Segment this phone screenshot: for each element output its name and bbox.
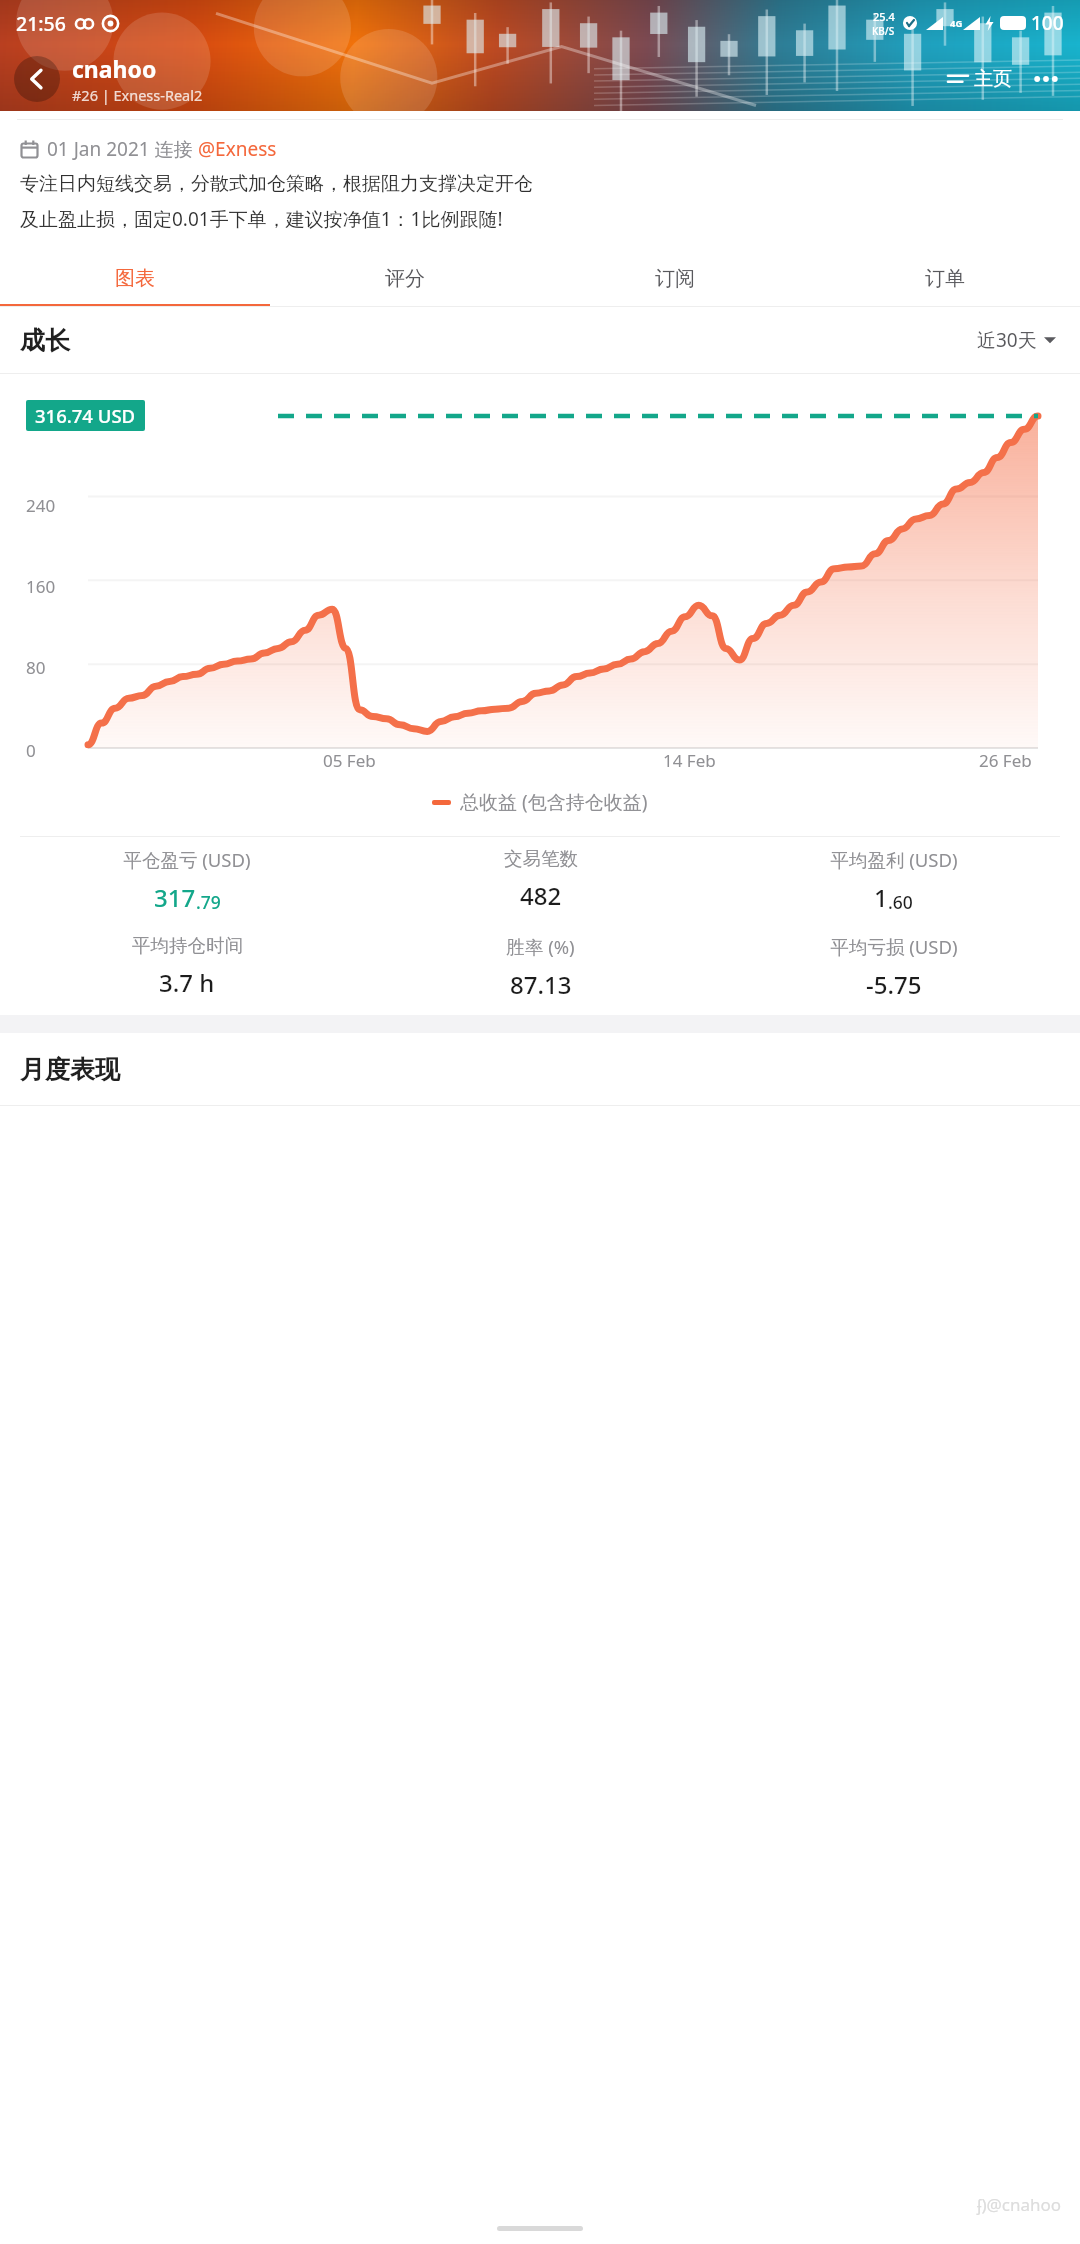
staticText: 100 (1031, 10, 1064, 36)
staticText: 4G (950, 17, 963, 30)
staticText: 1 (874, 881, 888, 914)
staticText: 80 (26, 656, 46, 679)
button[interactable]: 01 Jan 2021 连接 (20, 136, 1060, 162)
staticText: .60 (888, 890, 913, 914)
button[interactable]: 近30天 (973, 323, 1060, 357)
button[interactable]: 平均持仓时间 (10, 934, 364, 999)
staticText: 评分 (385, 266, 425, 291)
staticText: 3.7 h (159, 966, 215, 999)
staticText: #26 | Exness-Real2 (72, 85, 203, 105)
button[interactable]: 平均亏损 (USD) (717, 934, 1070, 1001)
staticText: 平均盈利 (USD) (830, 847, 958, 872)
staticText: -5.75 (866, 968, 922, 1001)
button[interactable]: 图表 (0, 252, 270, 304)
button[interactable]: 交易笔数 (364, 847, 717, 912)
staticText: 0 (26, 739, 36, 762)
staticText: 总收益 (包含持仓收益) (460, 789, 648, 815)
button[interactable]: 平仓盈亏 (USD) (10, 847, 364, 914)
button[interactable]: 订阅 (540, 252, 810, 304)
staticText: 317 (154, 881, 196, 914)
staticText: 25.4 (873, 9, 895, 24)
button[interactable]: 主页 (942, 63, 1018, 95)
button[interactable]: 订单 (810, 252, 1080, 304)
staticText: .79 (196, 890, 221, 914)
button[interactable]: Back (14, 56, 60, 102)
staticText: 订单 (925, 266, 965, 291)
staticText: 26 Feb (979, 749, 1032, 772)
staticText: KB/S (872, 24, 895, 38)
staticText: 及止盈止损，固定0.01手下单，建议按净值1：1比例跟随! (20, 206, 503, 232)
staticText: 05 Feb (323, 749, 376, 772)
staticText: 316.74 USD (35, 403, 136, 428)
staticText: @Exness (198, 136, 277, 162)
staticText: 平均持仓时间 (132, 934, 243, 957)
staticText: 胜率 (%) (506, 934, 575, 959)
staticText: 平仓盈亏 (USD) (123, 847, 251, 872)
staticText: ʄ)@cnahoo (977, 2193, 1062, 2216)
staticText: 87.13 (510, 968, 572, 1001)
button[interactable]: More options (1026, 59, 1066, 99)
staticText: 成长 (20, 325, 70, 356)
button[interactable]: 胜率 (%) (364, 934, 717, 1001)
staticText: 21:56 (16, 10, 66, 37)
staticText: 01 Jan 2021 连接 (47, 136, 198, 162)
staticText: 图表 (115, 266, 155, 291)
staticText: 交易笔数 (504, 847, 578, 870)
staticText: 近30天 (977, 327, 1037, 353)
staticText: cnahoo (72, 53, 157, 84)
staticText: 240 (26, 494, 56, 517)
staticText: 160 (26, 575, 56, 598)
staticText: 专注日内短线交易，分散式加仓策略，根据阻力支撑决定开仓 (20, 172, 533, 196)
staticText: 平均亏损 (USD) (830, 934, 958, 959)
staticText: 订阅 (655, 266, 695, 291)
staticText: 482 (520, 879, 562, 912)
button[interactable]: 平均盈利 (USD) (717, 847, 1070, 914)
staticText: 月度表现 (20, 1054, 120, 1085)
staticText: 14 Feb (663, 749, 716, 772)
button[interactable]: 评分 (270, 252, 540, 304)
staticText: 主页 (974, 67, 1012, 91)
